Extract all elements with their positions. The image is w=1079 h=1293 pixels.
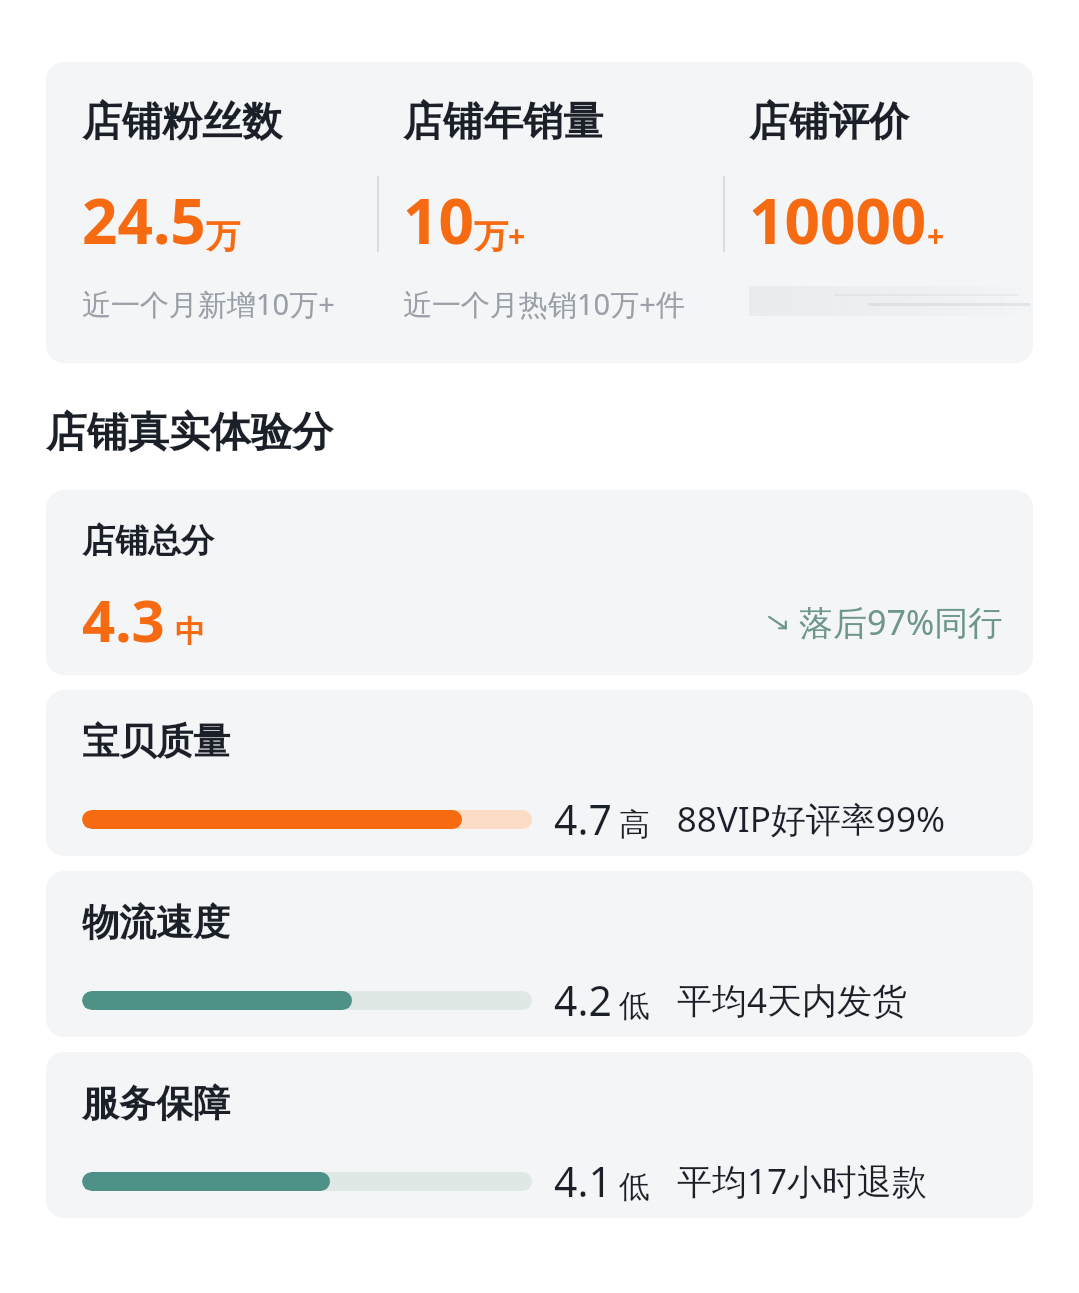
staticText: + [508,215,526,256]
staticText: 宝贝质量 [82,718,230,765]
staticText: 落后97%同行 [799,599,1003,645]
button[interactable]: 服务保障 [46,1052,1033,1218]
other: 下降趋势 [765,609,791,635]
button[interactable]: 店铺评价 [725,62,1033,363]
button[interactable]: 物流速度 [46,871,1033,1037]
staticText: 万 [474,215,508,258]
staticText: 中 [175,613,205,651]
staticText: 低 [619,1167,650,1206]
staticText: 万 [206,215,240,258]
staticText: 物流速度 [82,899,230,946]
staticText: 平均17小时退款 [676,1157,927,1205]
staticText: 24.5 [82,178,206,262]
button[interactable]: 店铺粉丝数 [46,62,377,363]
button[interactable]: 宝贝质量 [46,690,1033,856]
staticText: 服务保障 [82,1080,230,1127]
staticText: 10 [403,178,474,262]
staticText: 4.2 [554,972,612,1028]
button[interactable]: 下降趋势 [765,599,1003,645]
staticText: 高 [619,805,650,844]
staticText: 店铺真实体验分 [46,407,333,459]
button[interactable]: 店铺粉丝数 [46,62,1033,363]
button[interactable]: 店铺总分 [46,490,1033,675]
staticText: 低 [619,986,650,1025]
staticText: 4.1 [554,1153,612,1209]
staticText: + [927,215,945,256]
staticText: 88VIP好评率99% [676,795,945,843]
staticText: 4.7 [554,791,612,847]
button[interactable]: 店铺年销量 [379,62,723,363]
staticText: 平均4天内发货 [676,976,907,1024]
staticText: 店铺评价 [749,96,909,146]
staticText: 10000 [749,178,927,262]
staticText: 店铺总分 [82,520,214,562]
staticText: 近一个月热销10万+件 [403,284,685,324]
staticText: 店铺粉丝数 [82,96,282,146]
staticText: 店铺年销量 [403,96,603,146]
staticText: 4.3 [82,580,165,659]
staticText: 近一个月新增10万+ [82,284,335,324]
